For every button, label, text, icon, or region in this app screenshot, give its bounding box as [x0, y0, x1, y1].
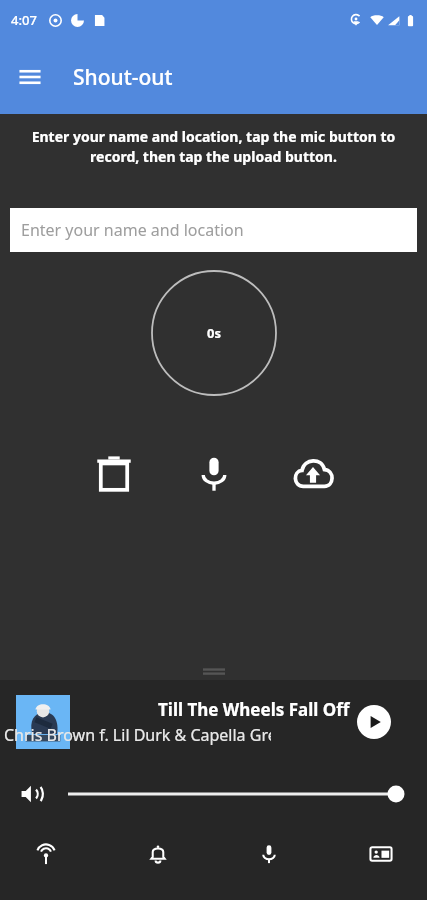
staticText: 4:07 — [11, 11, 37, 29]
staticText: 0s — [207, 324, 221, 342]
button[interactable]: Upload — [285, 446, 341, 502]
button[interactable]: Microphone — [245, 830, 293, 878]
button[interactable]: Volume — [12, 773, 54, 815]
staticText: Chris Brown f. Lil Durk & Capella Grey •… — [4, 724, 271, 746]
button[interactable]: Till The Wheels Fall Off — [0, 680, 427, 764]
button[interactable]: Delete recording — [86, 446, 142, 502]
button[interactable]: Cast output — [22, 830, 70, 878]
staticText: Enter your name and location — [21, 219, 244, 241]
button[interactable]: Enter your name and location — [10, 208, 417, 252]
staticText: Shout-out — [73, 63, 173, 92]
staticText: Till The Wheels Fall Off — [158, 698, 350, 721]
button[interactable]: Record — [186, 446, 242, 502]
button[interactable]: Notifications — [134, 830, 182, 878]
button[interactable]: Picture in picture — [357, 830, 405, 878]
button[interactable]: Play — [354, 702, 394, 742]
button[interactable]: Recording timer — [151, 270, 277, 396]
button[interactable]: Open navigation drawer — [6, 53, 54, 101]
button[interactable] — [68, 781, 405, 807]
button[interactable]: Expand panel — [203, 668, 225, 675]
staticText: Enter your name and location, tap the mi… — [22, 127, 405, 166]
